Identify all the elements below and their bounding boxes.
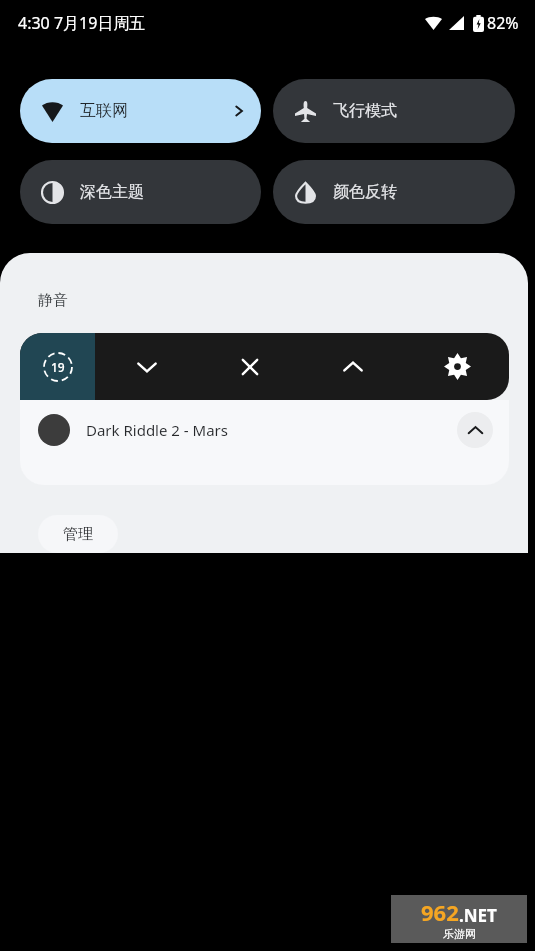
staticText: 颜色反转 [333,182,501,202]
staticText: 静音 [38,291,68,310]
staticText: 19 [51,359,65,375]
button[interactable]: Airplane mode [273,79,515,143]
button[interactable]: Expand [301,333,405,400]
button[interactable]: Settings [405,333,509,400]
staticText: 管理 [63,525,93,544]
staticText: 乐游网 [443,927,476,941]
staticText: 82% [487,12,519,34]
button[interactable]: Dismiss [198,333,301,400]
button[interactable]: Collapse [95,333,198,400]
button[interactable]: Dark Riddle 2 - Mars [20,400,509,485]
button[interactable]: 19 notifications [20,333,95,400]
button[interactable]: Collapse notification [457,412,493,448]
staticText: 962 [421,897,459,927]
staticText: 4:30 7月19日周五 [18,12,146,34]
button[interactable]: 管理 [38,515,118,553]
staticText: Dark Riddle 2 - Mars [86,420,457,440]
staticText: 飞行模式 [333,101,501,121]
staticText: 深色主题 [80,182,247,202]
button[interactable]: Dark theme [20,160,261,224]
button[interactable]: Internet [20,79,261,143]
staticText: .NET [459,904,497,927]
button[interactable]: Invert colors [273,160,515,224]
staticText: 互联网 [80,101,231,121]
